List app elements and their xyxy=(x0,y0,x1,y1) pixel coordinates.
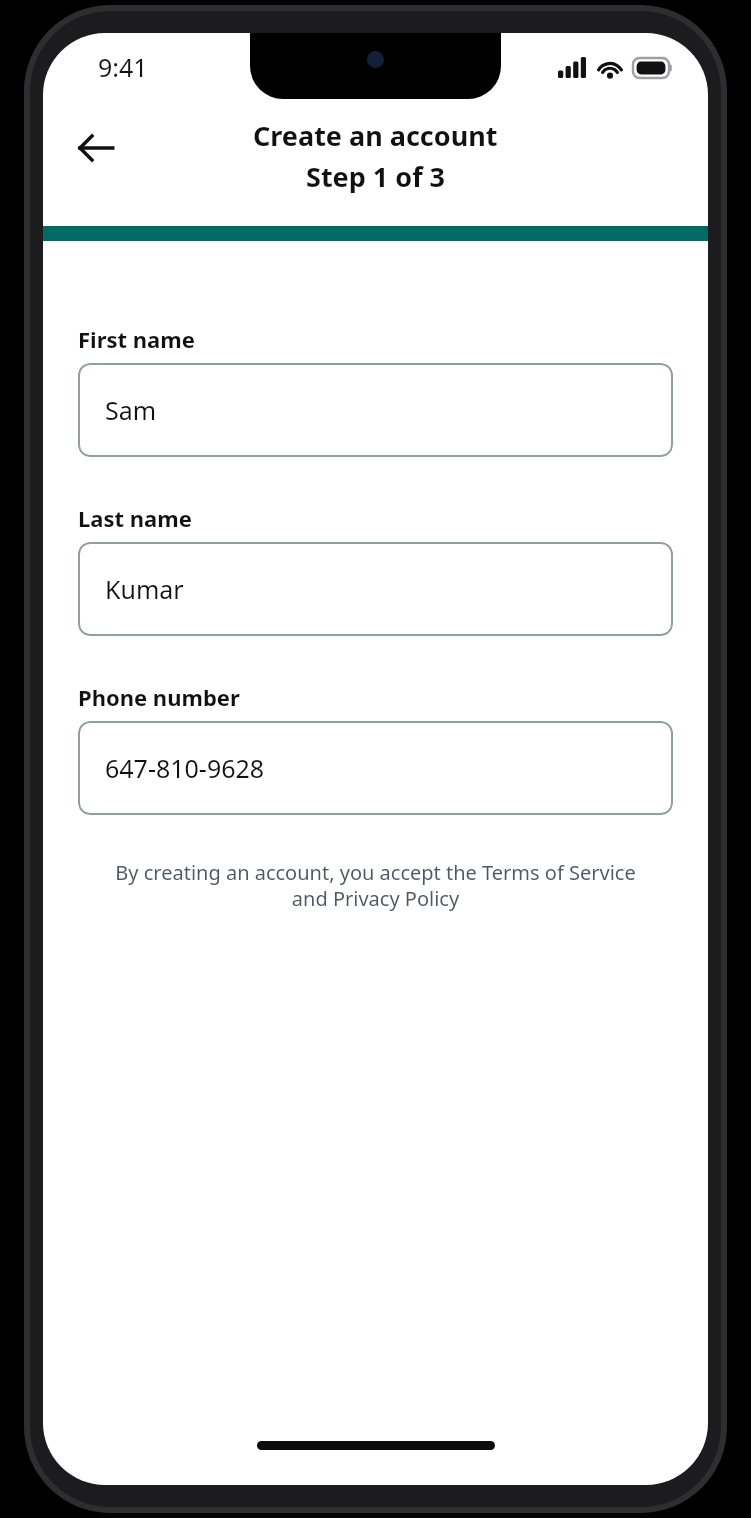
staticText: 647-810-9628 xyxy=(105,751,265,785)
button[interactable]: Phone number xyxy=(78,682,673,815)
staticText: Phone number xyxy=(78,682,240,712)
button[interactable]: Last name xyxy=(78,503,673,636)
staticText: 9:41 xyxy=(98,50,148,84)
staticText: Step 1 of 3 xyxy=(306,158,446,195)
staticText: Create an account xyxy=(253,117,498,154)
staticText: First name xyxy=(78,324,195,354)
staticText: Last name xyxy=(78,503,192,533)
staticText: Kumar xyxy=(105,572,184,606)
button[interactable]: Back xyxy=(65,117,127,179)
staticText: Sam xyxy=(105,393,157,427)
staticText: By creating an account, you accept the T… xyxy=(103,859,648,912)
button[interactable]: First name xyxy=(78,324,673,457)
